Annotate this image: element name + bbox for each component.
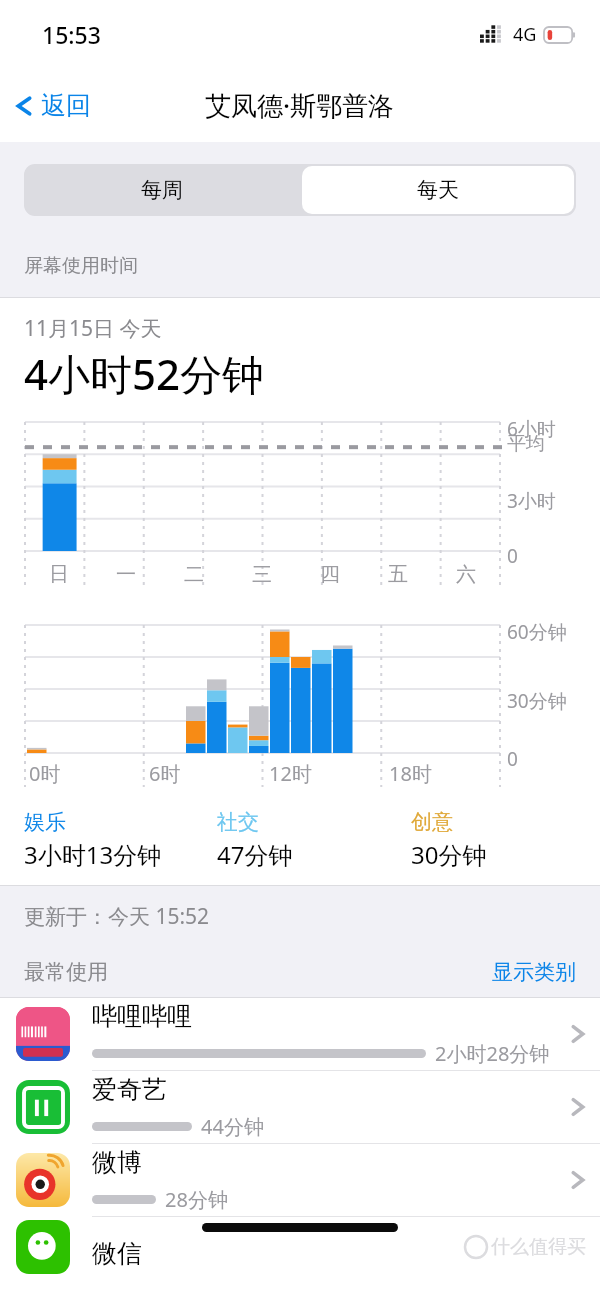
staticText: 一 — [116, 562, 136, 587]
staticText: 44分钟 — [201, 1113, 264, 1140]
staticText: 28分钟 — [165, 1186, 228, 1213]
staticText: 哔哩哔哩 — [92, 1001, 192, 1032]
staticText: 三 — [252, 562, 272, 587]
staticText: 4G — [513, 22, 537, 47]
staticText: 3小时13分钟 — [24, 838, 162, 871]
staticText: 五 — [388, 562, 408, 587]
staticText: 15:53 — [42, 19, 101, 50]
staticText: 0时 — [29, 760, 61, 787]
staticText: 艾凤德·斯鄂普洛 — [205, 87, 395, 123]
staticText: 0 — [507, 543, 518, 569]
staticText: 六 — [456, 562, 476, 587]
other: 查看 爱奇艺 详情 — [556, 1071, 600, 1143]
staticText: 微博 — [92, 1147, 142, 1178]
staticText: 日 — [49, 562, 69, 587]
staticText: 6时 — [149, 760, 181, 787]
button[interactable]: 娱乐 — [24, 809, 217, 871]
button[interactable]: 微信 — [0, 1217, 600, 1277]
button[interactable]: 返回 — [0, 82, 103, 129]
staticText: 娱乐 — [24, 809, 66, 835]
staticText: 创意 — [411, 809, 453, 835]
button[interactable]: 爱奇艺 — [0, 1071, 600, 1143]
button[interactable]: 社交 — [217, 809, 411, 871]
staticText: 30分钟 — [507, 688, 567, 714]
staticText: 47分钟 — [217, 838, 293, 871]
staticText: 四 — [320, 562, 340, 587]
staticText: 4小时52分钟 — [24, 345, 265, 402]
staticText: 30分钟 — [411, 838, 487, 871]
staticText: 60分钟 — [507, 619, 567, 645]
button[interactable]: 每周 — [24, 164, 300, 216]
staticText: 3小时 — [507, 488, 556, 514]
button[interactable]: 哔哩哔哩 — [0, 998, 600, 1070]
staticText: 显示类别 — [492, 959, 576, 985]
staticText: 11月15日 今天 — [24, 314, 162, 343]
staticText: 每天 — [417, 177, 459, 203]
button[interactable]: 微博 — [0, 1144, 600, 1216]
other: 查看 哔哩哔哩 详情 — [556, 998, 600, 1070]
staticText: 2小时28分钟 — [435, 1040, 550, 1067]
button[interactable]: 每天 — [302, 166, 574, 214]
staticText: 每周 — [141, 177, 183, 203]
button[interactable]: 显示类别 — [492, 959, 576, 985]
staticText: 社交 — [217, 809, 259, 835]
staticText: 最常使用 — [24, 959, 108, 985]
staticText: 12时 — [269, 760, 312, 787]
staticText: 0 — [507, 746, 518, 772]
staticText: 6小时 — [507, 416, 556, 442]
button[interactable]: 创意 — [411, 809, 576, 871]
staticText: 18时 — [389, 760, 432, 787]
staticText: 返回 — [41, 90, 91, 121]
staticText: 爱奇艺 — [92, 1074, 167, 1105]
staticText: 屏幕使用时间 — [24, 254, 138, 278]
staticText: 二 — [184, 562, 204, 587]
staticText: 微信 — [92, 1238, 142, 1269]
staticText: 更新于：今天 15:52 — [24, 902, 210, 931]
staticText: 什么值得买 — [491, 1235, 586, 1259]
staticText: 平均 — [507, 432, 545, 456]
other: 查看 微博 详情 — [556, 1144, 600, 1216]
